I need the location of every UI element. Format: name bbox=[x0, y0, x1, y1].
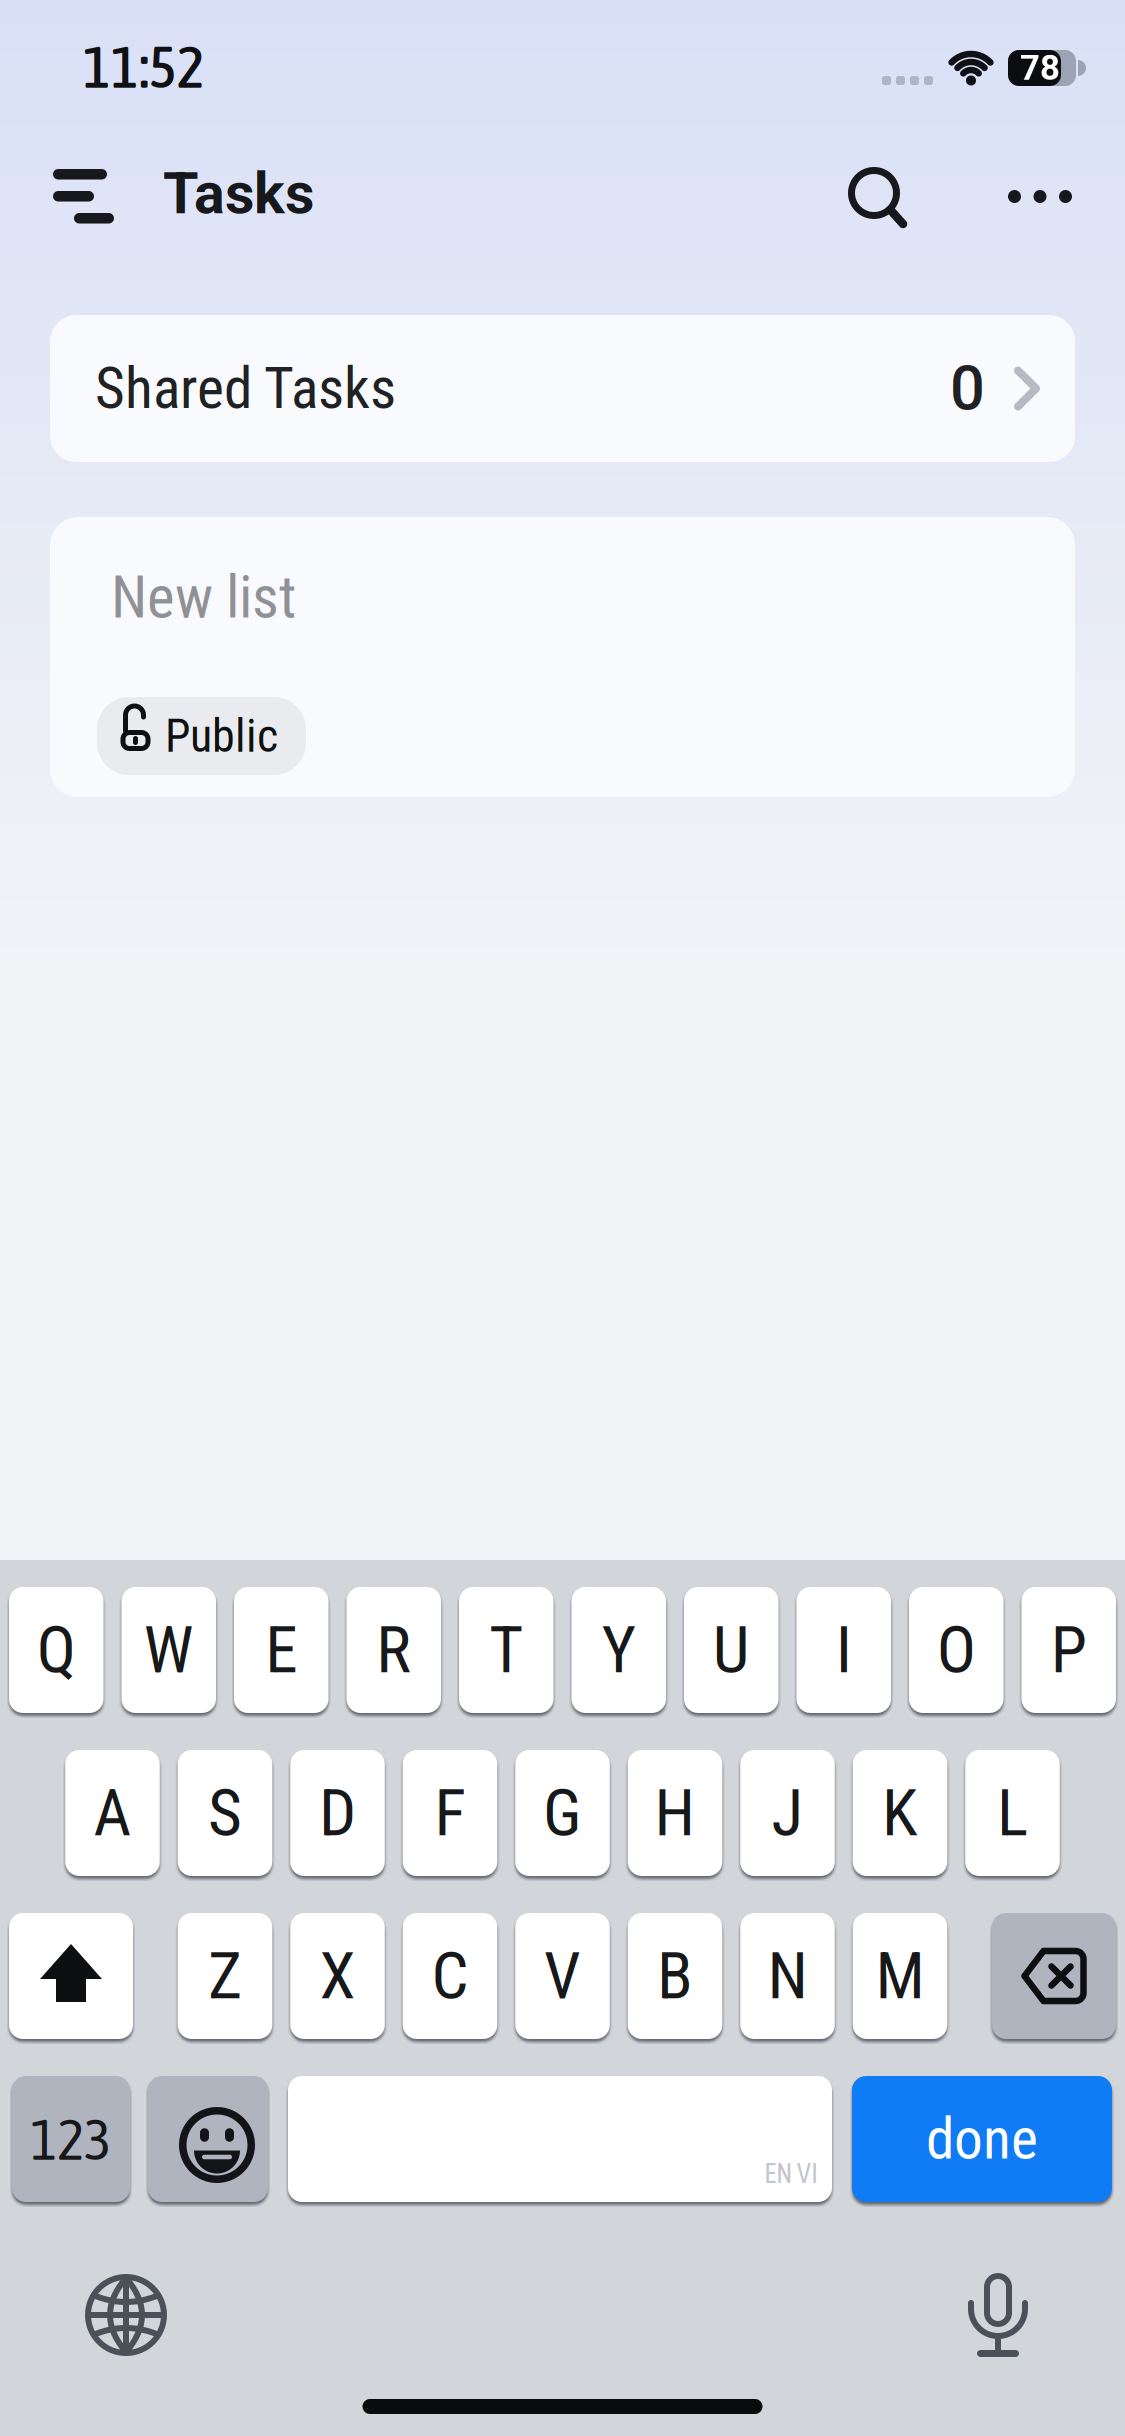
button[interactable]: B bbox=[628, 1913, 722, 2039]
staticText: V bbox=[544, 1938, 581, 2014]
button[interactable]: S bbox=[178, 1750, 272, 1876]
staticText: R bbox=[376, 1612, 411, 1688]
staticText: S bbox=[208, 1775, 242, 1851]
button[interactable]: F bbox=[403, 1750, 497, 1876]
button[interactable]: G bbox=[515, 1750, 610, 1876]
button[interactable]: Menu bbox=[43, 159, 124, 233]
button[interactable]: T bbox=[459, 1587, 553, 1713]
staticText: Q bbox=[37, 1612, 76, 1688]
staticText: C bbox=[431, 1938, 468, 2014]
staticText: Tasks bbox=[163, 160, 314, 227]
staticText: G bbox=[543, 1775, 582, 1851]
button[interactable]: Y bbox=[571, 1587, 666, 1713]
staticText: X bbox=[319, 1938, 355, 2014]
button[interactable]: O bbox=[909, 1587, 1003, 1713]
button[interactable]: done bbox=[852, 2076, 1112, 2202]
button[interactable]: D bbox=[290, 1750, 385, 1876]
staticText: N bbox=[767, 1938, 807, 2014]
staticText: A bbox=[93, 1775, 131, 1851]
button[interactable]: Search bbox=[848, 167, 908, 229]
button[interactable]: N bbox=[740, 1913, 835, 2039]
staticText: Shared Tasks bbox=[95, 355, 396, 422]
button[interactable]: E bbox=[234, 1587, 328, 1713]
staticText: 78 bbox=[1020, 48, 1060, 88]
button[interactable]: W bbox=[121, 1587, 216, 1713]
button[interactable]: Shift bbox=[9, 1913, 133, 2039]
button[interactable]: R bbox=[346, 1587, 441, 1713]
staticText: F bbox=[434, 1775, 465, 1851]
button[interactable]: L bbox=[965, 1750, 1060, 1876]
button[interactable]: Space bbox=[288, 2076, 832, 2202]
staticText: U bbox=[713, 1612, 750, 1688]
button[interactable]: Emoji bbox=[148, 2076, 268, 2202]
button[interactable]: 123 bbox=[12, 2076, 130, 2202]
staticText: M bbox=[875, 1938, 924, 2014]
button[interactable]: K bbox=[853, 1750, 947, 1876]
staticText: New list bbox=[111, 563, 296, 632]
button[interactable]: A bbox=[65, 1750, 160, 1876]
staticText: 11:52 bbox=[83, 33, 205, 100]
staticText: Y bbox=[602, 1612, 636, 1688]
staticText: B bbox=[657, 1938, 693, 2014]
button[interactable]: Delete bbox=[992, 1913, 1116, 2039]
button[interactable]: P bbox=[1021, 1587, 1116, 1713]
staticText: 123 bbox=[30, 2106, 111, 2172]
staticText: Z bbox=[208, 1938, 242, 2014]
button[interactable]: I bbox=[796, 1587, 891, 1713]
staticText: I bbox=[836, 1612, 852, 1688]
button[interactable]: More bbox=[1008, 170, 1072, 223]
button[interactable]: U bbox=[684, 1587, 778, 1713]
button[interactable]: V bbox=[515, 1913, 610, 2039]
button[interactable]: Z bbox=[178, 1913, 272, 2039]
button[interactable]: Dictation bbox=[971, 2273, 1025, 2357]
button[interactable]: H bbox=[628, 1750, 722, 1876]
staticText: D bbox=[319, 1775, 356, 1851]
button[interactable]: C bbox=[403, 1913, 497, 2039]
staticText: O bbox=[937, 1612, 976, 1688]
button[interactable]: Public bbox=[97, 697, 306, 775]
staticText: 0 bbox=[950, 353, 985, 424]
staticText: K bbox=[882, 1775, 918, 1851]
staticText: Public bbox=[165, 709, 278, 763]
staticText: H bbox=[654, 1775, 695, 1851]
staticText: W bbox=[144, 1612, 194, 1688]
button[interactable]: Q bbox=[9, 1587, 103, 1713]
staticText: J bbox=[771, 1775, 803, 1851]
staticText: E bbox=[265, 1612, 297, 1688]
button[interactable]: J bbox=[740, 1750, 835, 1876]
staticText: L bbox=[997, 1775, 1028, 1851]
button[interactable]: M bbox=[853, 1913, 947, 2039]
button[interactable]: Shared Tasks bbox=[50, 315, 1075, 462]
staticText: P bbox=[1051, 1612, 1087, 1688]
staticText: EN VI bbox=[764, 2157, 818, 2189]
staticText: done bbox=[926, 2105, 1038, 2173]
staticText: T bbox=[489, 1612, 523, 1688]
button[interactable]: X bbox=[290, 1913, 385, 2039]
button[interactable]: Next keyboard bbox=[85, 2274, 167, 2356]
